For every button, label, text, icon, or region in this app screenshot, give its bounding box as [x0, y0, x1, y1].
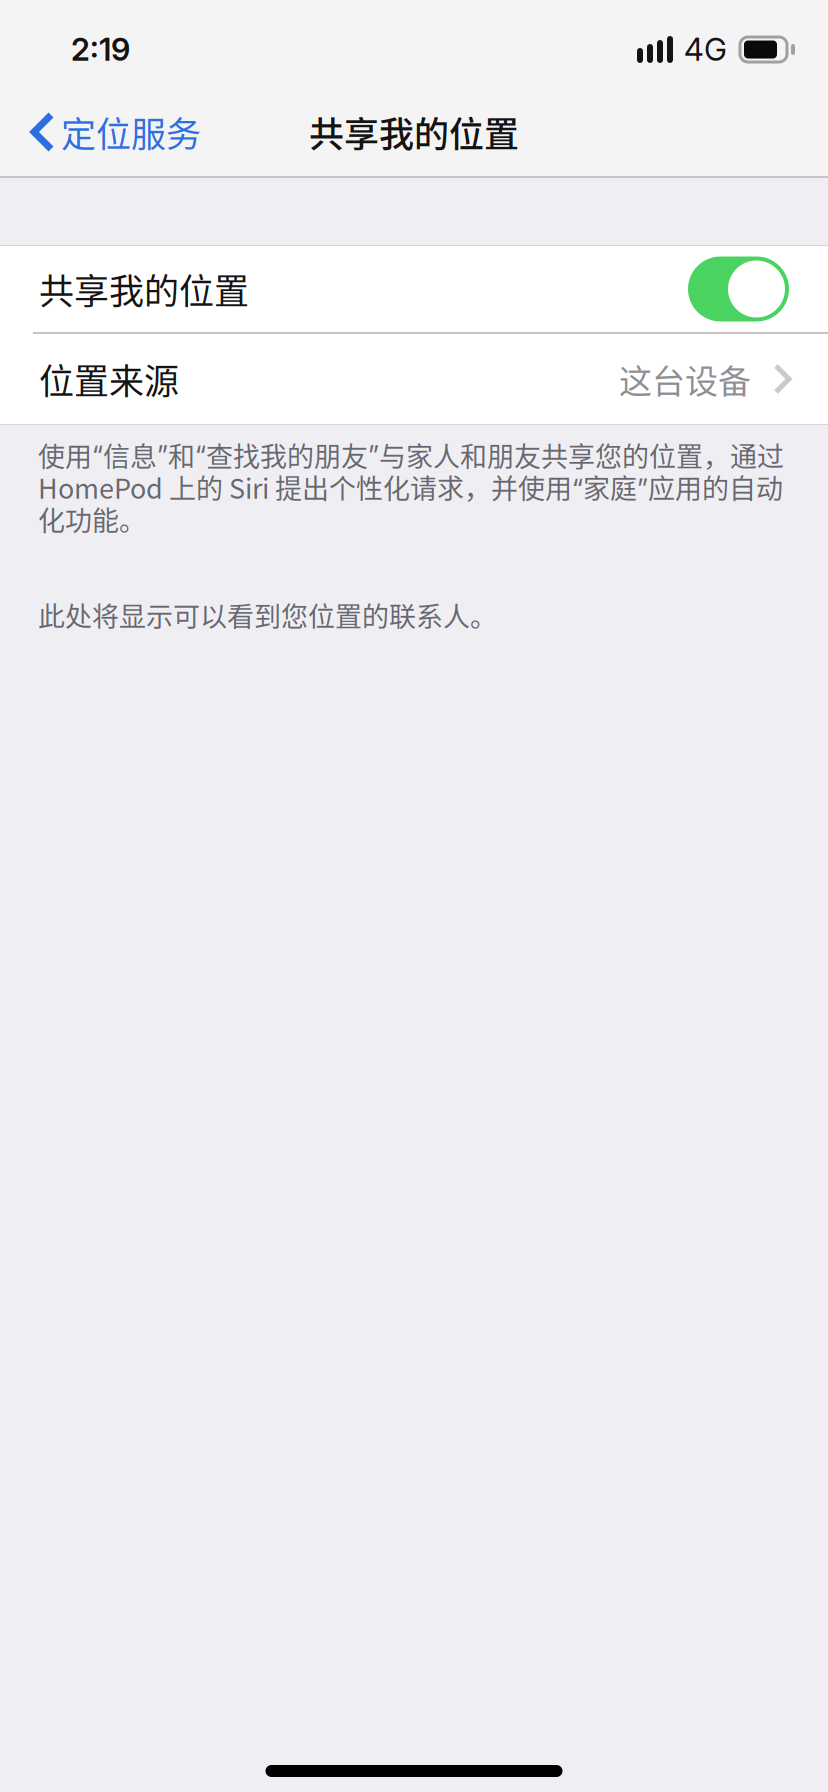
- staticText: 共享我的位置: [309, 107, 519, 157]
- staticText: 共享我的位置: [39, 264, 249, 314]
- staticText: 4G: [684, 31, 727, 68]
- button[interactable]: 共享我的位置: [0, 246, 828, 332]
- staticText: 位置来源: [39, 354, 179, 404]
- button[interactable]: 位置来源: [0, 334, 828, 424]
- staticText: 这台设备: [619, 355, 751, 403]
- staticText: 定位服务: [61, 107, 201, 157]
- staticText: 使用“信息”和“查找我的朋友”与家人和朋友共享您的位置，通过: [38, 436, 784, 474]
- staticText: 2:19: [71, 31, 130, 68]
- staticText: 化功能。: [38, 500, 146, 538]
- button[interactable]: 返回定位服务: [0, 88, 212, 176]
- staticText: 此处将显示可以看到您位置的联系人。: [38, 596, 497, 634]
- staticText: HomePod 上的 Siri 提出个性化请求，并使用“家庭”应用的自动: [38, 468, 783, 506]
